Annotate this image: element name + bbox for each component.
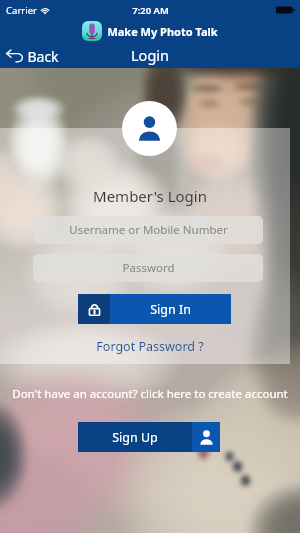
staticText: Forgot Password ?: [96, 338, 204, 355]
staticText: Member's Login: [93, 186, 207, 206]
button[interactable]: Sign Up: [78, 422, 220, 452]
staticText: Back: [27, 47, 59, 66]
staticText: Make My Photo Talk: [107, 24, 218, 39]
staticText: Login: [131, 45, 169, 65]
staticText: Sign In: [150, 301, 191, 318]
button[interactable]: Username or Mobile Number: [33, 216, 263, 244]
button[interactable]: Password: [33, 254, 263, 282]
staticText: Username or Mobile Number: [69, 222, 228, 238]
staticText: Carrier: [6, 4, 37, 17]
staticText: Sign Up: [112, 429, 158, 446]
staticText: Password: [122, 260, 175, 276]
staticText: 7:20 AM: [132, 4, 169, 17]
button[interactable]: Sign In: [78, 294, 231, 324]
button[interactable]: Back: [5, 46, 59, 66]
staticText: Don't have an account? click here to cre…: [12, 386, 288, 402]
other: Back: [5, 46, 25, 66]
button[interactable]: Forgot Password ?: [90, 337, 210, 356]
button[interactable]: Don't have an account? click here to cre…: [0, 386, 300, 402]
